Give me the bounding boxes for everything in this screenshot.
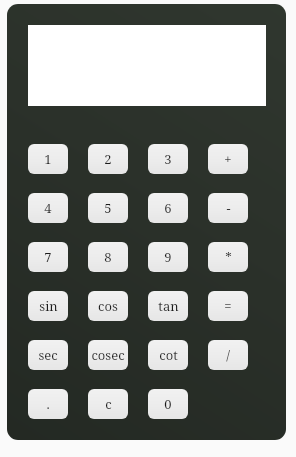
button[interactable]: cosec (88, 340, 128, 370)
button[interactable]: . (28, 389, 68, 419)
button[interactable]: sec (28, 340, 68, 370)
staticText: c (105, 395, 112, 413)
button[interactable]: 5 (88, 193, 128, 223)
button[interactable]: 4 (28, 193, 68, 223)
staticText: + (224, 150, 232, 168)
button[interactable]: 7 (28, 242, 68, 272)
staticText: 0 (164, 395, 172, 413)
button[interactable]: 2 (88, 144, 128, 174)
staticText: 4 (44, 199, 52, 217)
button[interactable]: tan (148, 291, 188, 321)
staticText: 9 (164, 248, 172, 266)
staticText: cos (98, 297, 118, 315)
staticText: 1 (44, 150, 52, 168)
staticText: sin (39, 297, 58, 315)
staticText: tan (158, 297, 179, 315)
button[interactable]: 1 (28, 144, 68, 174)
staticText: 2 (104, 150, 112, 168)
button[interactable]: cot (148, 340, 188, 370)
staticText: . (46, 395, 50, 413)
button[interactable]: 6 (148, 193, 188, 223)
staticText: / (226, 346, 230, 364)
staticText: cosec (91, 346, 125, 364)
staticText: sec (38, 346, 58, 364)
staticText: 6 (164, 199, 172, 217)
staticText: 8 (104, 248, 112, 266)
staticText: 3 (164, 150, 172, 168)
staticText: - (226, 199, 231, 217)
button[interactable]: c (88, 389, 128, 419)
button[interactable]: - (208, 193, 248, 223)
button[interactable]: * (208, 242, 248, 272)
button[interactable]: cos (88, 291, 128, 321)
staticText: = (224, 297, 232, 315)
staticText: 5 (104, 199, 112, 217)
button[interactable]: 8 (88, 242, 128, 272)
button[interactable]: sin (28, 291, 68, 321)
button[interactable]: / (208, 340, 248, 370)
staticText: cot (159, 346, 178, 364)
button[interactable]: 3 (148, 144, 188, 174)
staticText: * (225, 248, 232, 266)
button[interactable]: + (208, 144, 248, 174)
button[interactable]: 9 (148, 242, 188, 272)
button[interactable]: 0 (148, 389, 188, 419)
staticText: 7 (44, 248, 52, 266)
button[interactable]: = (208, 291, 248, 321)
